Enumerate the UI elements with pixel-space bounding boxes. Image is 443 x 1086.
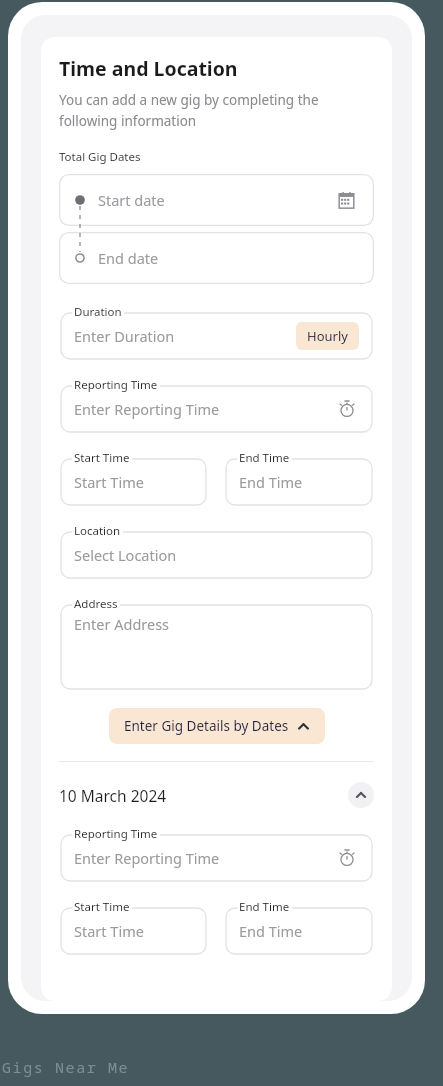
button[interactable]: End date <box>59 232 374 284</box>
button[interactable]: 10 March 2024 <box>59 782 374 808</box>
staticText: Address <box>74 596 118 612</box>
staticText: Start date <box>98 190 333 210</box>
staticText: Start Time <box>74 899 130 915</box>
button[interactable]: Pick reporting time <box>335 397 359 421</box>
staticText: Reporting Time <box>74 826 158 842</box>
button[interactable]: Start date <box>59 174 374 226</box>
staticText: Reporting Time <box>74 377 158 393</box>
staticText: Start Time <box>74 921 193 941</box>
staticText: End Time <box>239 899 290 915</box>
button[interactable]: Pick reporting time <box>335 846 359 870</box>
staticText: Gigs Near Me <box>2 1057 130 1077</box>
staticText: Enter Gig Details by Dates <box>124 717 289 735</box>
staticText: Total Gig Dates <box>59 149 141 165</box>
staticText: Enter Address <box>74 614 359 634</box>
button[interactable]: Enter Gig Details by Dates <box>109 708 325 744</box>
staticText: Select Location <box>74 545 359 565</box>
staticText: Enter Duration <box>74 326 296 346</box>
staticText: End Time <box>239 921 359 941</box>
button[interactable]: Collapse <box>348 782 374 808</box>
staticText: Time and Location <box>59 55 238 82</box>
staticText: End Time <box>239 472 359 492</box>
staticText: End Time <box>239 450 290 466</box>
staticText: Enter Reporting Time <box>74 399 335 419</box>
staticText: Start Time <box>74 450 130 466</box>
button[interactable]: Pick date <box>333 187 359 213</box>
staticText: End date <box>98 248 359 268</box>
staticText: Enter Reporting Time <box>74 848 335 868</box>
staticText: Duration <box>74 304 122 320</box>
staticText: Start Time <box>74 472 193 492</box>
staticText: You can add a new gig by completing the … <box>59 91 374 130</box>
staticText: 10 March 2024 <box>59 785 348 806</box>
staticText: Location <box>74 523 121 539</box>
staticText: Hourly <box>307 327 348 345</box>
button[interactable]: Hourly <box>296 322 359 350</box>
